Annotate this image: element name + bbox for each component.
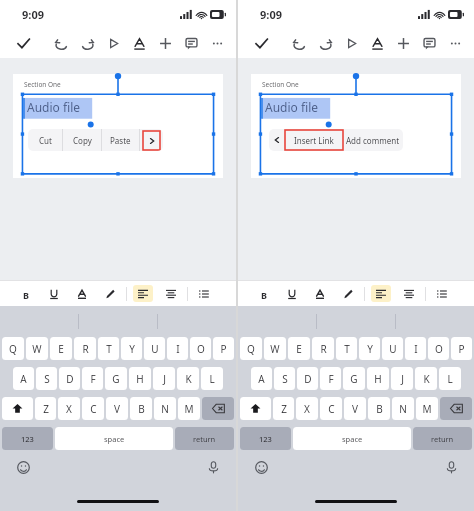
button[interactable]: J <box>391 367 413 390</box>
button[interactable]: X <box>58 397 80 420</box>
button[interactable]: Z <box>35 397 56 420</box>
button[interactable]: V <box>344 397 366 420</box>
button[interactable]: space <box>293 427 411 450</box>
button[interactable]: F <box>82 367 103 390</box>
button[interactable]: Emoji <box>14 458 32 476</box>
button[interactable]: D <box>297 367 318 390</box>
button[interactable]: Bulleted list <box>432 284 452 304</box>
button[interactable]: T <box>98 337 119 360</box>
button[interactable]: Bulleted list <box>194 284 214 304</box>
button[interactable]: Redo <box>74 30 100 56</box>
button[interactable]: T <box>336 337 357 360</box>
button[interactable]: Align left <box>371 285 391 302</box>
button[interactable]: Undo <box>48 30 74 56</box>
button[interactable]: A <box>13 367 34 390</box>
button[interactable]: L <box>439 367 461 390</box>
button[interactable]: A <box>251 367 272 390</box>
button[interactable]: return <box>413 427 472 450</box>
button[interactable]: Underline <box>282 284 302 304</box>
button[interactable]: space <box>55 427 173 450</box>
button[interactable]: Cut <box>28 129 62 151</box>
button[interactable]: Done <box>248 30 274 56</box>
button[interactable]: G <box>105 367 127 390</box>
button[interactable]: K <box>177 367 199 390</box>
button[interactable]: J <box>153 367 175 390</box>
button[interactable]: L <box>201 367 223 390</box>
button[interactable]: I <box>167 337 188 360</box>
button[interactable]: E <box>50 337 72 360</box>
button[interactable]: 123 <box>2 427 53 450</box>
button[interactable]: More options <box>442 30 468 56</box>
button[interactable]: B <box>368 397 390 420</box>
button[interactable]: F <box>320 367 341 390</box>
button[interactable]: N <box>154 397 176 420</box>
button[interactable]: Redo <box>312 30 338 56</box>
button[interactable]: N <box>392 397 414 420</box>
button[interactable]: G <box>343 367 365 390</box>
button[interactable]: E <box>288 337 310 360</box>
button[interactable]: Y <box>121 337 142 360</box>
button[interactable]: H <box>367 367 389 390</box>
button[interactable]: S <box>274 367 295 390</box>
button[interactable]: W <box>264 337 286 360</box>
button[interactable]: B <box>130 397 152 420</box>
button[interactable]: M <box>416 397 438 420</box>
button[interactable]: P <box>451 337 472 360</box>
button[interactable]: Highlight <box>100 284 120 304</box>
button[interactable]: I <box>405 337 426 360</box>
button[interactable]: Align center <box>161 284 181 304</box>
button[interactable]: Align left <box>133 285 153 302</box>
button[interactable]: Shift <box>2 397 33 420</box>
button[interactable]: Bold <box>16 284 36 304</box>
button[interactable]: Text color <box>72 284 92 304</box>
button[interactable]: Present <box>100 30 126 56</box>
button[interactable]: Backspace <box>202 397 234 420</box>
button[interactable]: C <box>320 397 342 420</box>
button[interactable]: R <box>74 337 96 360</box>
button[interactable]: K <box>415 367 437 390</box>
button[interactable]: return <box>175 427 234 450</box>
button[interactable]: Comments <box>416 30 442 56</box>
button[interactable]: Text format <box>126 30 152 56</box>
button[interactable]: Emoji <box>252 458 270 476</box>
button[interactable]: H <box>129 367 151 390</box>
button[interactable]: R <box>312 337 334 360</box>
button[interactable]: Highlight <box>338 284 358 304</box>
button[interactable]: More actions <box>140 129 163 151</box>
button[interactable]: Dictation <box>442 458 460 476</box>
button[interactable]: Done <box>10 30 36 56</box>
button[interactable]: M <box>178 397 200 420</box>
button[interactable]: O <box>190 337 211 360</box>
button[interactable]: Add comment <box>343 129 403 151</box>
button[interactable]: Bold <box>254 284 274 304</box>
button[interactable]: Y <box>359 337 380 360</box>
button[interactable]: Z <box>273 397 294 420</box>
button[interactable]: Comments <box>178 30 204 56</box>
button[interactable]: W <box>26 337 48 360</box>
button[interactable]: Insert <box>390 30 416 56</box>
button[interactable]: U <box>144 337 165 360</box>
button[interactable]: U <box>382 337 403 360</box>
button[interactable]: O <box>428 337 449 360</box>
button[interactable]: Shift <box>240 397 271 420</box>
button[interactable]: Backspace <box>440 397 472 420</box>
button[interactable]: C <box>82 397 104 420</box>
button[interactable]: V <box>106 397 128 420</box>
button[interactable]: Underline <box>44 284 64 304</box>
button[interactable]: P <box>213 337 234 360</box>
button[interactable]: Text color <box>310 284 330 304</box>
button[interactable]: Insert Link <box>285 130 343 150</box>
button[interactable]: Q <box>240 337 262 360</box>
button[interactable]: Align center <box>399 284 419 304</box>
button[interactable]: Dictation <box>204 458 222 476</box>
button[interactable]: Present <box>338 30 364 56</box>
button[interactable]: Text format <box>364 30 390 56</box>
button[interactable]: Q <box>2 337 24 360</box>
button[interactable]: X <box>296 397 318 420</box>
button[interactable]: S <box>36 367 57 390</box>
button[interactable]: Undo <box>286 30 312 56</box>
button[interactable]: Back <box>269 129 285 151</box>
button[interactable]: D <box>59 367 80 390</box>
button[interactable]: 123 <box>240 427 291 450</box>
button[interactable]: Insert <box>152 30 178 56</box>
